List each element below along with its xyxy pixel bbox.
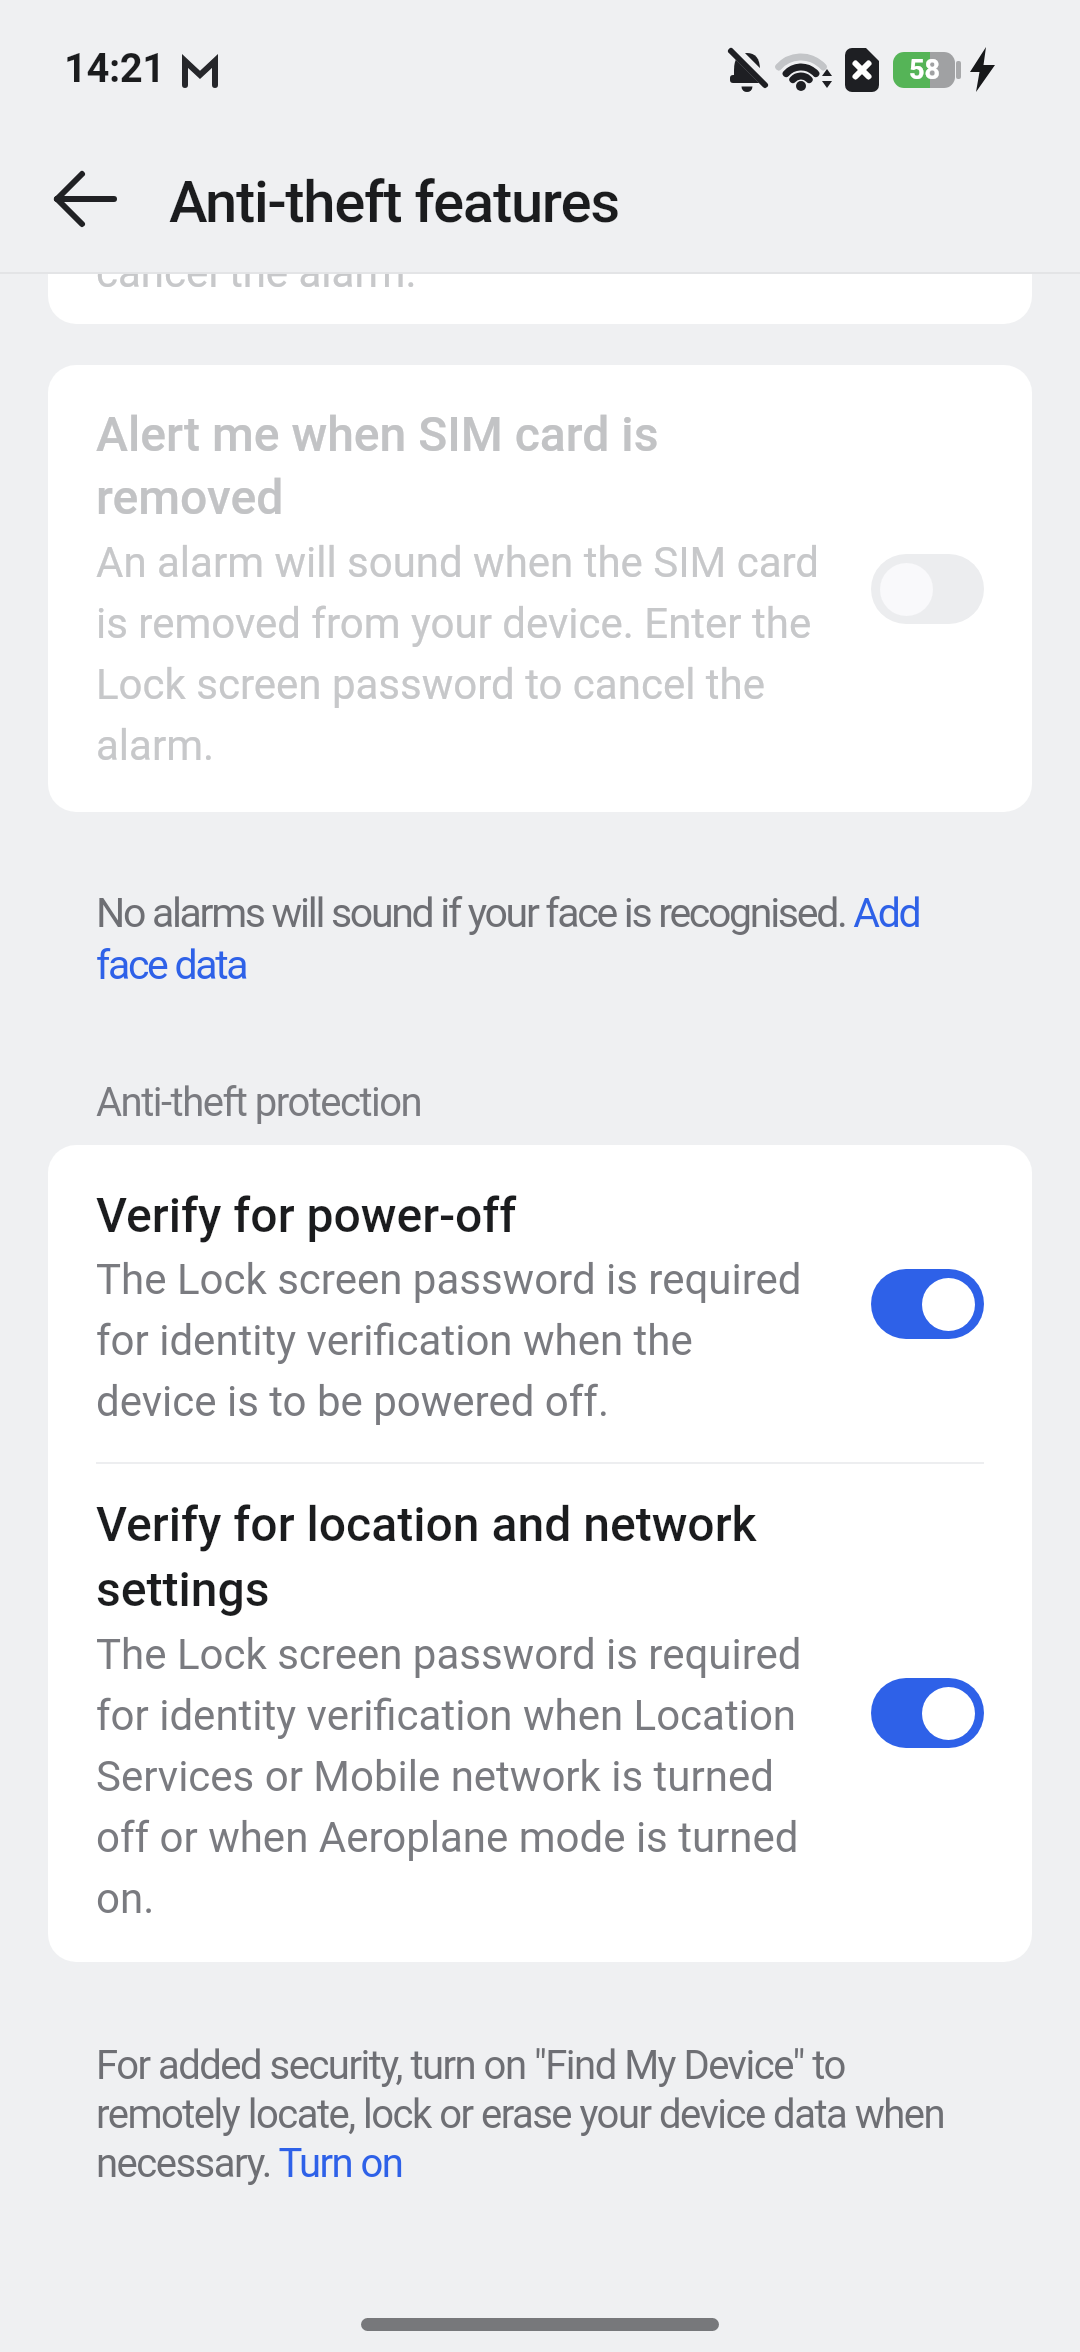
button[interactable]: Verify for power-off — [48, 1145, 1032, 1462]
staticText: 58 — [909, 54, 940, 86]
staticText: An alarm will sound when the SIM card is… — [96, 538, 820, 771]
button[interactable]: Alert me when SIM card is removed — [48, 365, 1032, 812]
button[interactable] — [871, 1678, 984, 1748]
staticText: 14:21 — [64, 45, 165, 92]
staticText: cancel the alarm. — [96, 274, 417, 297]
staticText: Anti-theft features — [169, 168, 619, 236]
button[interactable] — [40, 158, 132, 242]
button[interactable]: Verify for location and network settings — [48, 1464, 1032, 1962]
button[interactable] — [871, 1269, 984, 1339]
staticText: The Lock screen password is required for… — [96, 1630, 802, 1924]
staticText: Verify for location and network settings — [96, 1496, 757, 1618]
staticText: The Lock screen password is required for… — [96, 1255, 802, 1427]
staticText: Verify for power-off — [96, 1187, 517, 1243]
staticText: Anti-theft protection — [96, 1079, 422, 1126]
button[interactable]: No alarms will sound if your face is rec… — [96, 889, 920, 989]
staticText: Alert me when SIM card is removed — [96, 406, 659, 526]
button[interactable] — [871, 554, 984, 624]
button[interactable]: For added security, turn on "Find My Dev… — [96, 2042, 945, 2187]
